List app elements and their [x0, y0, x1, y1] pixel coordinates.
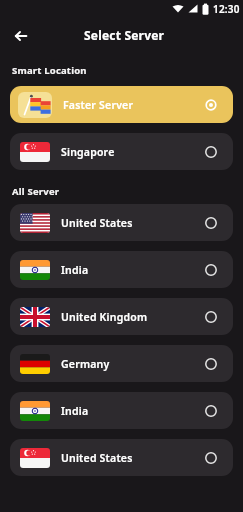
staticText: India [61, 263, 89, 277]
staticText: Select Server [84, 27, 165, 43]
button[interactable] [7, 22, 35, 50]
button[interactable]: United States [10, 204, 233, 241]
staticText: 12:30 [213, 2, 240, 16]
button[interactable]: India [10, 251, 233, 288]
staticText: Germany [61, 357, 110, 371]
button[interactable]: India [10, 392, 233, 429]
staticText: India [61, 404, 89, 418]
button[interactable]: United States [10, 439, 233, 476]
staticText: United States [61, 216, 133, 230]
button[interactable]: Germany [10, 345, 233, 382]
staticText: United States [61, 451, 133, 465]
staticText: Singapore [61, 145, 115, 159]
staticText: Smart Location [12, 64, 87, 77]
staticText: United Kingdom [61, 310, 148, 324]
staticText: All Server [12, 185, 60, 198]
button[interactable]: Faster Server [10, 86, 233, 123]
button[interactable]: Singapore [10, 133, 233, 170]
staticText: Faster Server [63, 98, 134, 112]
button[interactable]: United Kingdom [10, 298, 233, 335]
